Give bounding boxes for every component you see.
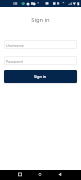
button[interactable]: Username	[4, 40, 77, 49]
staticText: Password	[6, 59, 23, 64]
staticText: Username	[6, 43, 24, 48]
button[interactable]: Recents	[16, 170, 24, 180]
staticText: Sign in	[0, 16, 81, 24]
button[interactable]: Sign in	[4, 70, 77, 83]
button[interactable]: Back	[56, 170, 64, 180]
button[interactable]: Password	[4, 56, 77, 65]
staticText: Sign in	[34, 74, 47, 79]
button[interactable]: Home	[36, 170, 44, 180]
